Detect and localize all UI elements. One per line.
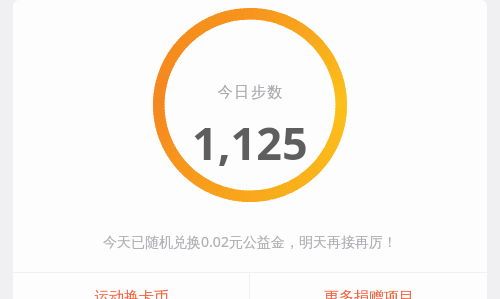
other: 今日步数进度 xyxy=(153,8,347,202)
button[interactable]: 运动换卡币 xyxy=(13,273,249,299)
staticText: 今天已随机兑换0.02元公益金，明天再接再厉！ xyxy=(103,232,397,251)
staticText: 1,125 xyxy=(192,112,308,173)
button[interactable]: 更多捐赠项目 xyxy=(250,273,487,299)
staticText: 今日步数 xyxy=(217,83,283,102)
staticText: 运动换卡币 xyxy=(94,288,169,299)
staticText: 更多捐赠项目 xyxy=(324,288,414,299)
